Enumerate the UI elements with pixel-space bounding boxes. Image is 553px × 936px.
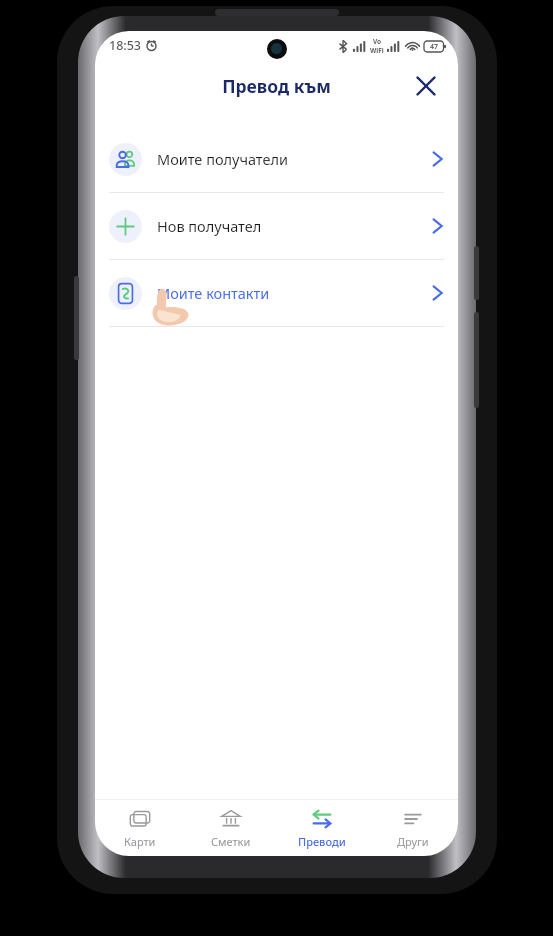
- button[interactable]: Преводи: [276, 800, 367, 856]
- staticText: Нов получател: [157, 216, 262, 236]
- staticText: Други: [397, 834, 429, 849]
- button[interactable]: Нов получател: [95, 193, 458, 259]
- staticText: 47: [430, 42, 439, 52]
- button[interactable]: Сметки: [185, 800, 276, 856]
- button[interactable]: Карти: [95, 800, 185, 856]
- staticText: Преводи: [298, 834, 346, 849]
- staticText: Моите получатели: [157, 149, 288, 169]
- staticText: 18:53: [109, 37, 142, 54]
- button[interactable]: Моите контакти: [95, 260, 458, 326]
- staticText: Сметки: [211, 834, 251, 849]
- button[interactable]: Close: [408, 68, 444, 104]
- staticText: Моите контакти: [157, 283, 270, 303]
- staticText: Vo: [373, 37, 382, 46]
- staticText: WiFi: [370, 46, 384, 55]
- button[interactable]: Моите получатели: [95, 126, 458, 192]
- staticText: Превод към: [222, 74, 331, 98]
- button[interactable]: Други: [367, 800, 458, 856]
- staticText: Карти: [124, 834, 156, 849]
